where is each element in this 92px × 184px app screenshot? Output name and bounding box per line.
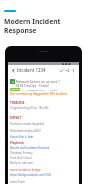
button[interactable]: Share <box>64 67 70 73</box>
button[interactable]: Resolve <box>58 67 64 73</box>
staticText: Rolled back deploy #2041 <box>10 129 42 133</box>
staticText: https://bridge.example.com/1234 <box>10 173 51 177</box>
button[interactable]: More options <box>70 67 76 73</box>
button[interactable]: Back <box>10 67 16 73</box>
staticText: Database: Primary <box>10 151 33 155</box>
staticText: Front End: Critical <box>10 156 32 160</box>
staticText: Response <box>4 26 37 35</box>
staticText: Modern Incident <box>4 17 61 26</box>
staticText: same incidence bridge <box>10 168 41 172</box>
staticText: How to Run it, later <box>10 135 34 139</box>
staticText: ACTIVE <box>11 88 19 91</box>
staticText: Triggered at big 02 on: 18m 04s <box>10 106 49 110</box>
staticText: Incident 1234 <box>17 67 46 73</box>
button[interactable]: Network failure on us-east-1 <box>10 79 68 87</box>
staticText: Our monitoring flagged the 500 incident <box>10 92 68 96</box>
staticText: Triggered 18:42 <box>26 88 45 91</box>
staticText: Production nodes degraded <box>10 122 44 126</box>
staticText: SEV2 DevOps · Crew3 <box>16 83 49 87</box>
staticText: Latest Team <box>10 180 25 184</box>
staticText: Owner <box>50 88 58 91</box>
button[interactable]: ACTIVE <box>11 88 19 91</box>
staticText: IMPACT <box>10 116 22 120</box>
staticText: Resolve and Escalation Runbook <box>10 146 50 150</box>
staticText: TIMELINE <box>10 101 25 105</box>
staticText: Playbook <box>10 141 24 145</box>
staticText: Notify on call team <box>10 161 33 165</box>
staticText: Network failure on us-east-1 <box>16 79 60 83</box>
